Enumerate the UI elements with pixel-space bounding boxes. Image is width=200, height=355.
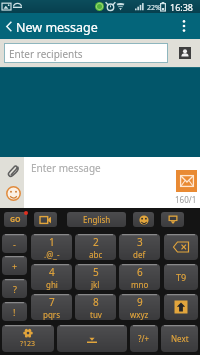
button[interactable]: 6 [119,264,160,290]
button[interactable]: Back [0,13,17,39]
button[interactable]: Enter message [24,157,172,208]
button[interactable]: Add contact [177,45,192,60]
button[interactable]: Attach [2,160,22,180]
staticText: New message [16,19,98,36]
button[interactable]: Enter recipients [4,43,168,63]
staticText: 7 [49,295,55,309]
button[interactable]: More options [175,13,193,39]
staticText: Next [171,333,189,344]
button[interactable]: ! [2,302,27,321]
button[interactable]: Emoji [3,183,23,203]
button[interactable]: English [67,212,126,227]
button[interactable]: Next [161,325,198,352]
button[interactable]: 7 [31,294,72,320]
staticText: 22% [147,3,161,13]
button[interactable]: Voice input [34,212,57,227]
staticText: ? [13,283,17,295]
staticText: 3 [137,235,143,249]
staticText: pqrs [43,309,60,320]
button[interactable]: Send [176,170,197,192]
staticText: 16:38 [170,1,194,13]
staticText: wxyz [130,309,149,320]
staticText: .@_- [44,249,60,260]
staticText: Enter message [31,161,101,175]
staticText: GO [10,215,21,225]
button[interactable]: 8 [75,294,116,320]
button[interactable]: - [2,234,27,253]
staticText: 6 [137,265,143,279]
button[interactable]: + [2,256,27,275]
staticText: + [12,260,18,272]
button[interactable]: 1 [31,234,72,260]
staticText: Enter recipients [9,47,83,61]
staticText: jkl [91,279,100,290]
staticText: 1 [49,235,55,249]
button[interactable]: 2 [75,234,116,260]
button[interactable]: Go [4,212,27,227]
staticText: ?123 [20,339,36,349]
button[interactable]: Backspace [164,234,198,260]
button[interactable]: 9 [119,294,160,320]
button[interactable]: 4 [31,264,72,290]
staticText: 8 [93,295,99,309]
staticText: T9 [176,271,187,283]
staticText: 2 [93,235,99,249]
button[interactable]: ?/+ [130,325,158,352]
staticText: English [83,214,111,225]
button[interactable]: 5 [75,264,116,290]
button[interactable]: 3 [119,234,160,260]
staticText: ?/+ [138,333,150,344]
staticText: 4 [49,265,55,279]
staticText: abc [89,249,103,260]
staticText: def [133,249,146,260]
button[interactable]: Symbols [2,325,54,352]
button[interactable]: Shift [164,294,198,320]
button[interactable]: Space [57,325,127,352]
staticText: 9 [137,295,143,309]
button[interactable]: ? [2,279,27,298]
staticText: ghi [46,279,58,290]
staticText: 160/1 [175,194,197,205]
staticText: ! [13,306,16,318]
button[interactable]: T9 [164,264,198,290]
button[interactable]: Hide keyboard [161,212,184,227]
button[interactable]: Emoji [133,212,154,227]
staticText: mno [131,279,149,290]
staticText: - [13,238,16,250]
staticText: tuv [90,309,102,320]
staticText: 5 [93,265,99,279]
